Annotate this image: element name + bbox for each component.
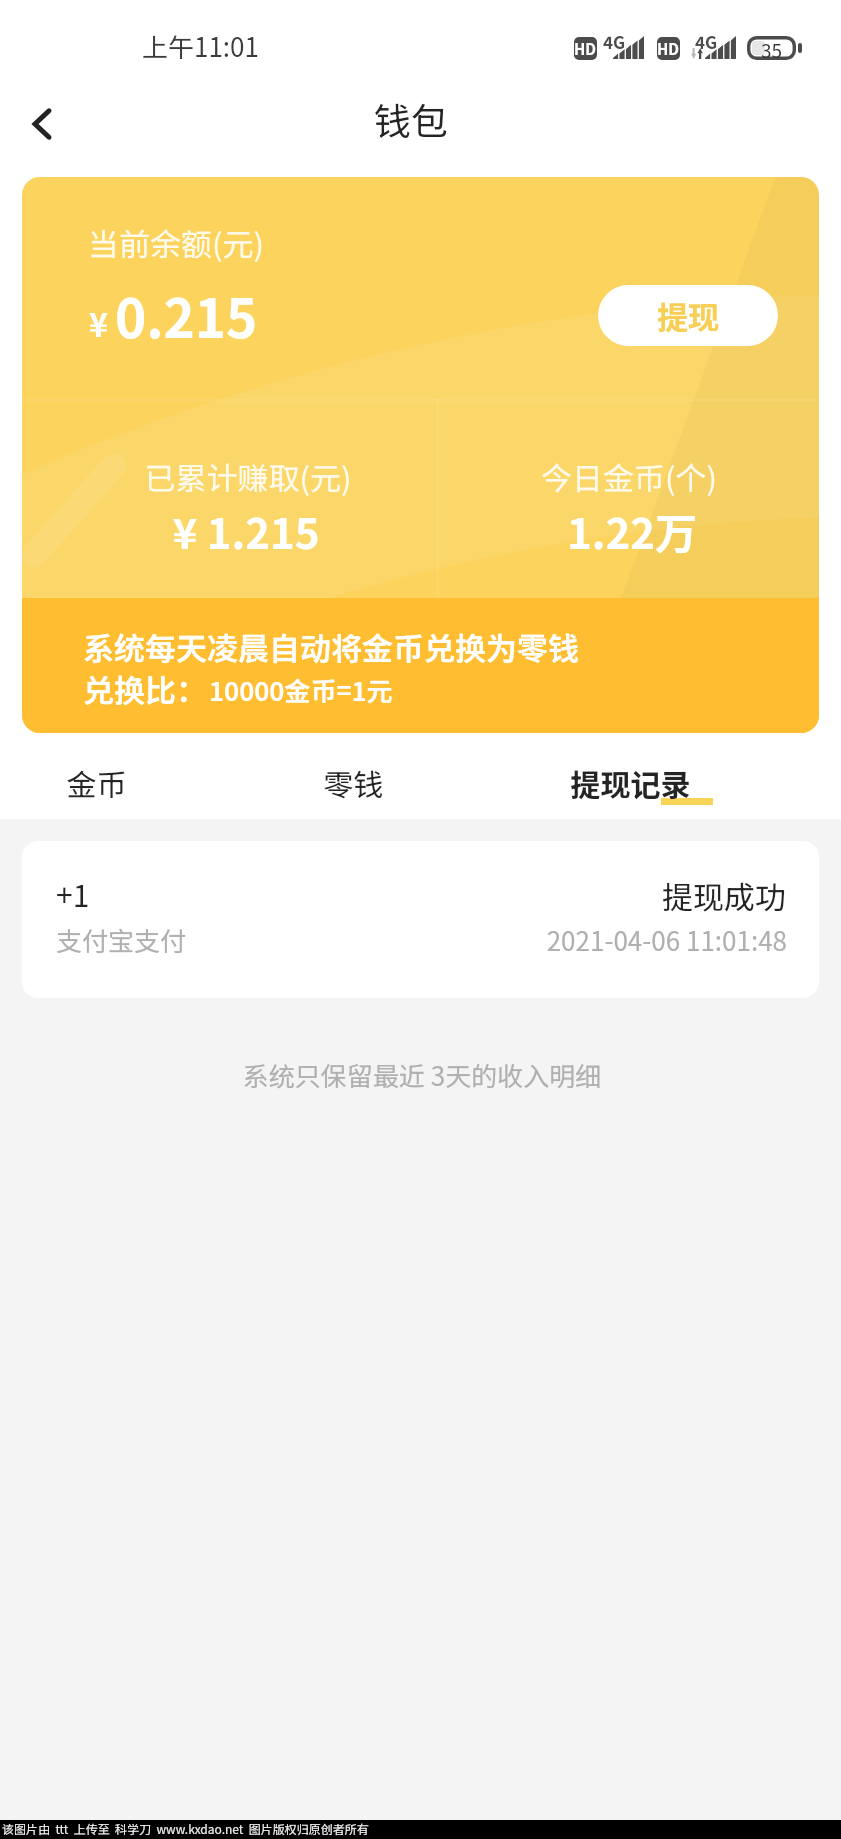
staticText: 今日金币(个) — [429, 454, 829, 499]
staticText: 2021-04-06 11:01:48 — [387, 921, 787, 959]
staticText: 提现 — [657, 293, 719, 338]
staticText: ¥ 1.215 — [46, 500, 446, 561]
staticText: 0.215 — [115, 277, 258, 354]
staticText: 当前余额(元) — [88, 220, 264, 265]
staticText: 已累计赚取(元) — [48, 454, 448, 499]
staticText: 该图片由 ttt 上传至 科学刀 www.kxdao.net 图片版权归原创者所… — [2, 1820, 369, 1837]
staticText: 钱包 — [211, 92, 611, 146]
staticText: 金币 — [0, 761, 240, 804]
staticText: 10000金币=1元 — [209, 671, 393, 709]
staticText: 4G — [603, 29, 626, 54]
staticText: +1 — [56, 872, 90, 915]
staticText: HD — [574, 38, 597, 60]
button[interactable]: 提现 — [598, 285, 778, 346]
staticText: 上午11:01 — [142, 27, 259, 65]
staticText: HD — [657, 38, 680, 60]
staticText: 35 — [761, 36, 783, 60]
button[interactable]: 提现记录 — [554, 733, 841, 819]
button[interactable]: 零钱 — [287, 733, 554, 819]
staticText: 1.22万 — [432, 500, 832, 561]
staticText: ¥ — [89, 300, 108, 346]
button[interactable]: +1 — [22, 841, 819, 998]
staticText: 提现成功 — [386, 873, 786, 918]
staticText: 4G — [695, 29, 718, 54]
staticText: 零钱 — [220, 761, 487, 804]
staticText: 提现记录 — [487, 761, 774, 804]
staticText: 系统每天凌晨自动将金币兑换为零钱 — [83, 624, 579, 669]
staticText: 支付宝支付 — [56, 921, 187, 959]
staticText: 系统只保留最近 3天的收入明细 — [222, 1056, 622, 1094]
staticText: 兑换比： — [83, 666, 207, 711]
button[interactable]: Back — [16, 95, 74, 153]
button[interactable]: 金币 — [0, 733, 287, 819]
